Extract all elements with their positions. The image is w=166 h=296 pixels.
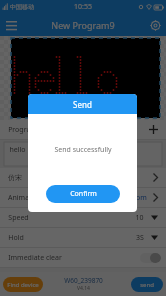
button[interactable]: Immediate clear toggle (140, 253, 161, 263)
staticText: W60_239870 (64, 276, 103, 285)
staticText: 仿宋 (8, 173, 22, 182)
staticText: send (140, 281, 154, 289)
staticText: 10 (135, 213, 144, 223)
button[interactable]: Immediate clear (0, 248, 166, 268)
staticText: Find device (7, 281, 39, 289)
button[interactable]: Program (0, 120, 166, 140)
button[interactable]: Confirm (46, 185, 120, 203)
staticText: Program (8, 125, 37, 135)
staticText: Confirm (70, 189, 97, 199)
button[interactable]: Speed (0, 208, 166, 228)
button[interactable]: Settings (144, 14, 166, 36)
staticText: Animation (8, 193, 42, 203)
staticText: 中国移动 (10, 3, 34, 11)
staticText: Immediate clear (8, 253, 62, 263)
staticText: hello (9, 145, 26, 155)
staticText: Hold (8, 233, 24, 243)
staticText: Speed (8, 213, 29, 223)
staticText: New Program9 (51, 19, 115, 31)
staticText: Send (73, 99, 92, 110)
button[interactable]: Animation (0, 188, 166, 208)
button[interactable]: Find device (3, 277, 43, 292)
staticText: V4.14 (77, 285, 90, 292)
staticText: Random (119, 193, 147, 203)
button[interactable]: send (131, 277, 163, 292)
button[interactable]: Menu (0, 14, 22, 36)
staticText: 3S (136, 233, 144, 243)
staticText: Send successfully (54, 145, 112, 155)
button[interactable]: 仿宋 (0, 168, 166, 188)
staticText: 10:55 (74, 2, 92, 12)
button[interactable]: Hold (0, 228, 166, 248)
